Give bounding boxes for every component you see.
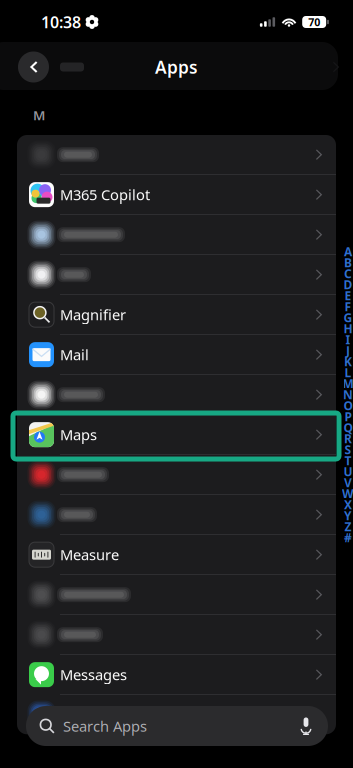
staticText: 10:38 [41,11,81,33]
staticText: R [344,430,352,446]
staticText: P [344,408,351,424]
button[interactable] [17,695,336,734]
staticText: Maps [60,425,97,444]
staticText: Messages [60,665,127,684]
button[interactable]: Search Apps [26,706,328,746]
staticText: Q [343,419,352,435]
staticText: G [343,309,352,325]
button[interactable]: Magnifier [17,295,336,334]
staticText: N [343,386,353,402]
button[interactable] [17,255,336,294]
button[interactable] [17,495,336,534]
staticText: A [344,243,352,259]
staticText: Z [344,518,351,534]
button[interactable]: Messages [17,655,336,694]
button[interactable] [17,575,336,614]
staticText: X [344,496,352,512]
button[interactable] [17,135,336,174]
staticText: O [343,397,352,413]
staticText: V [344,474,352,490]
staticText: E [344,287,351,303]
staticText: D [343,276,352,292]
staticText: Search Apps [63,716,147,736]
button[interactable]: Mail [17,335,336,374]
staticText: F [344,298,351,314]
staticText: B [344,254,352,270]
button[interactable]: M365 Copilot [17,175,336,214]
staticText: Mail [60,345,89,364]
button[interactable] [17,615,336,654]
staticText: W [342,485,353,501]
staticText: Y [344,507,352,523]
staticText: # [344,529,352,545]
button[interactable]: Measure [17,535,336,574]
button[interactable]: Maps [17,415,336,454]
staticText: M365 Copilot [60,185,150,204]
staticText: C [344,265,352,281]
staticText: L [344,364,351,380]
button[interactable] [17,215,336,254]
button[interactable] [17,375,336,414]
staticText: K [344,353,352,369]
staticText: U [343,463,352,479]
button[interactable]: Back [18,51,49,82]
button[interactable] [17,455,336,494]
staticText: 70 [308,15,320,29]
staticText: J [346,342,350,358]
staticText: Apps [155,55,198,78]
staticText: S [344,441,351,457]
staticText: I [345,331,350,347]
staticText: M [342,375,353,391]
staticText: T [344,452,351,468]
staticText: H [343,320,352,336]
staticText: Measure [60,545,119,564]
staticText: M [33,106,45,124]
staticText: Magnifier [60,305,126,324]
